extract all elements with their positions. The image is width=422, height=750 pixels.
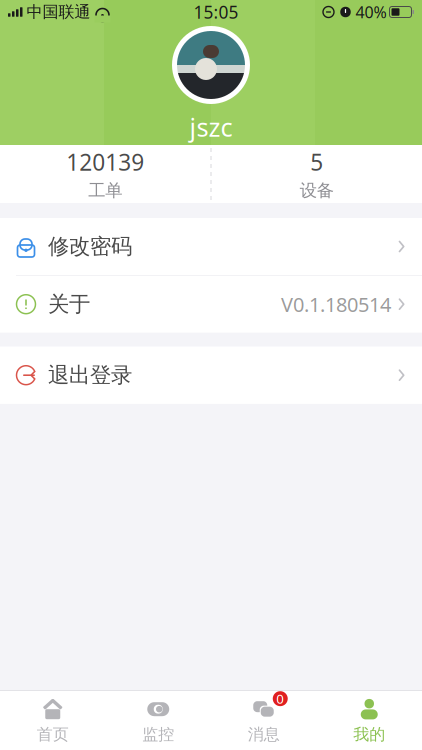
staticText: 120139 (66, 147, 144, 177)
button[interactable]: 修改密码 (0, 218, 422, 275)
staticText: 首页 (37, 725, 69, 744)
staticText: 工单 (88, 180, 122, 201)
button[interactable]: 退出登录 (0, 347, 422, 404)
staticText: 监控 (142, 725, 174, 744)
button[interactable]: Profile photo (172, 26, 250, 104)
button[interactable]: 监控 (105, 691, 211, 750)
button[interactable]: 5 (211, 145, 422, 203)
staticText: V0.1.180514 (281, 291, 391, 317)
staticText: 中国联通 (26, 2, 90, 22)
staticText: 15:05 (193, 0, 238, 23)
button[interactable]: 关于 (0, 276, 422, 333)
staticText: 我的 (353, 725, 385, 744)
button[interactable]: 0 (211, 691, 316, 750)
button[interactable]: 首页 (0, 691, 105, 750)
staticText: 5 (310, 147, 323, 177)
staticText: 消息 (248, 725, 280, 744)
staticText: 关于 (48, 291, 90, 317)
button[interactable]: 120139 (0, 145, 210, 203)
staticText: 退出登录 (48, 362, 132, 388)
staticText: 40% (355, 1, 386, 23)
staticText: 修改密码 (48, 233, 132, 260)
staticText: 0 (276, 690, 284, 707)
button[interactable]: 我的 (316, 691, 422, 750)
staticText: jszc (189, 110, 232, 144)
staticText: 设备 (300, 180, 334, 201)
